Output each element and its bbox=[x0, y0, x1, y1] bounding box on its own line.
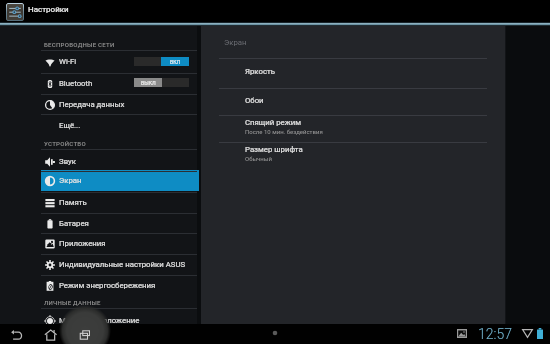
staticText: Спящий режим bbox=[245, 118, 302, 127]
button[interactable]: Звук bbox=[41, 151, 199, 172]
button[interactable]: Ещё... bbox=[41, 115, 199, 136]
staticText: Экран bbox=[59, 176, 82, 185]
staticText: 12:57 bbox=[478, 326, 513, 342]
button[interactable]: Передача данных bbox=[41, 94, 199, 115]
staticText: Ещё... bbox=[59, 121, 81, 130]
button[interactable]: Settings bbox=[6, 3, 24, 21]
staticText: ВКЛ bbox=[170, 59, 181, 65]
button[interactable]: Режим энергосбережения bbox=[41, 275, 199, 296]
button[interactable]: Спящий режим bbox=[200, 114, 488, 138]
staticText: Мое местоположение bbox=[59, 316, 140, 324]
button[interactable]: Батарея bbox=[41, 213, 199, 234]
staticText: Экран bbox=[224, 38, 247, 47]
staticText: ЛИЧНЫЕ ДАННЫЕ bbox=[44, 299, 101, 306]
staticText: После 10 мин. бездействия bbox=[245, 128, 323, 135]
button[interactable]: Память bbox=[41, 192, 199, 213]
button[interactable]: Home bbox=[44, 328, 58, 342]
staticText: Батарея bbox=[59, 219, 89, 228]
staticText: Размер шрифта bbox=[245, 145, 303, 154]
staticText: Настройки bbox=[28, 5, 69, 14]
staticText: Обои bbox=[245, 96, 264, 105]
button[interactable]: Wi-Fi bbox=[41, 51, 199, 72]
staticText: БЕСПРОВОДНЫЕ СЕТИ bbox=[44, 41, 115, 48]
staticText: Передача данных bbox=[59, 100, 125, 109]
button[interactable]: Яркость bbox=[200, 60, 488, 82]
button[interactable]: Recent apps bbox=[78, 328, 92, 342]
button[interactable]: Bluetooth bbox=[41, 73, 199, 94]
staticText: Режим энергосбережения bbox=[59, 281, 156, 290]
button[interactable]: Screenshot notification bbox=[457, 329, 467, 338]
button[interactable]: ВЫКЛ bbox=[134, 78, 189, 87]
button[interactable]: Экран bbox=[41, 170, 199, 191]
button[interactable]: Размер шрифта bbox=[200, 141, 488, 165]
button[interactable]: Индивидуальные настройки ASUS bbox=[41, 254, 199, 275]
staticText: Память bbox=[59, 198, 87, 207]
button[interactable]: Приложения bbox=[41, 233, 199, 254]
staticText: Яркость bbox=[245, 67, 275, 76]
button[interactable]: ВКЛ bbox=[134, 57, 189, 66]
button[interactable]: Обои bbox=[200, 89, 488, 111]
staticText: Приложения bbox=[59, 239, 106, 248]
staticText: Wi-Fi bbox=[59, 57, 77, 66]
staticText: ВЫКЛ bbox=[141, 80, 156, 86]
staticText: Звук bbox=[59, 157, 76, 166]
staticText: Bluetooth bbox=[59, 79, 93, 88]
staticText: УСТРОЙСТВО bbox=[44, 140, 86, 147]
staticText: Обычный bbox=[245, 155, 272, 162]
button[interactable]: Back bbox=[10, 328, 24, 342]
staticText: Индивидуальные настройки ASUS bbox=[59, 260, 186, 269]
button[interactable]: Мое местоположение bbox=[41, 310, 199, 324]
